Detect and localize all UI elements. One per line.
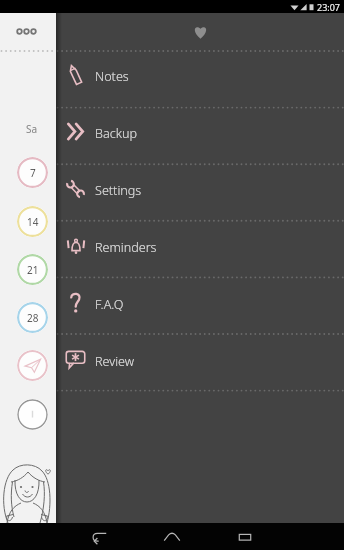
button[interactable]: Home [159, 524, 185, 550]
staticText: Sa [26, 122, 38, 136]
button[interactable]: 14 [17, 206, 48, 237]
button[interactable]: Back [87, 524, 113, 550]
staticText: F.A.Q [95, 296, 124, 313]
staticText: 23:07 [317, 1, 341, 13]
button[interactable]: Backup [56, 107, 344, 164]
staticText: 28 [27, 311, 39, 325]
staticText: 7 [30, 166, 36, 180]
button[interactable]: Send [17, 350, 48, 381]
button[interactable]: Review [56, 335, 344, 392]
staticText: Backup [95, 125, 137, 142]
button[interactable]: Recent apps [232, 524, 258, 550]
button[interactable]: More options [16, 28, 37, 35]
staticText: Review [95, 353, 135, 370]
button[interactable]: 7 [17, 157, 48, 188]
button[interactable]: Add [17, 399, 48, 430]
staticText: Notes [95, 68, 129, 85]
staticText: 21 [27, 263, 39, 277]
button[interactable]: 21 [17, 254, 48, 285]
button[interactable]: Notes [56, 50, 344, 107]
staticText: Reminders [95, 239, 157, 256]
button[interactable]: 28 [17, 302, 48, 333]
button[interactable]: Reminders [56, 221, 344, 278]
button[interactable]: F.A.Q [56, 278, 344, 335]
button[interactable]: Settings [56, 164, 344, 221]
staticText: Settings [95, 182, 142, 199]
button[interactable]: Favourites [187, 19, 213, 45]
staticText: 14 [27, 215, 39, 229]
